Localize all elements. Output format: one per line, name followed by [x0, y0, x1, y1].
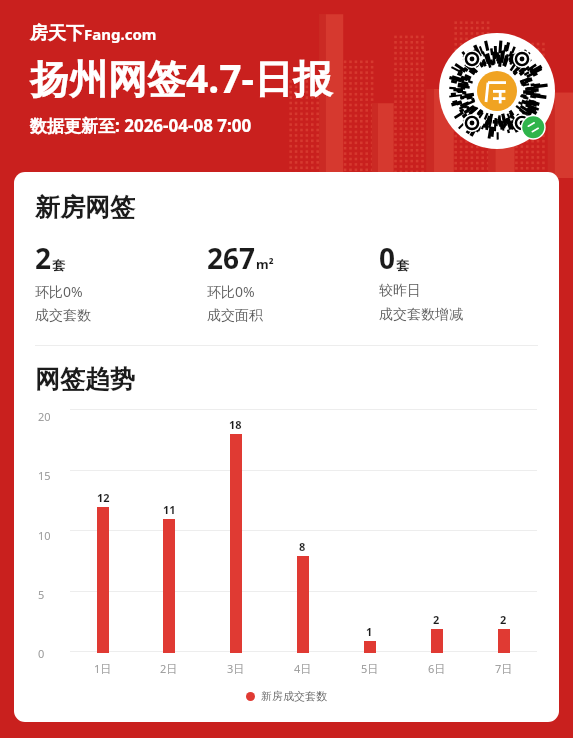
staticText: 5日 [361, 661, 379, 676]
staticText: 20 [38, 409, 51, 424]
staticText: 数据更新至: 2026-04-08 7:00 [30, 114, 252, 137]
staticText: 房天下 [30, 22, 84, 45]
staticText: 10 [38, 528, 51, 543]
staticText: 成交面积 [207, 307, 263, 325]
button[interactable]: 2 [470, 409, 537, 676]
staticText: 扬州网签4.7-日报 [30, 51, 333, 104]
staticText: 12 [97, 490, 110, 505]
staticText: m² [256, 255, 274, 273]
staticText: 0 [38, 646, 45, 661]
button[interactable]: 11 [136, 409, 202, 676]
staticText: 18 [229, 417, 242, 432]
staticText: 2 [35, 239, 52, 277]
staticText: 新房网签 [35, 192, 135, 223]
staticText: 较昨日 [379, 282, 421, 300]
staticText: 0 [379, 239, 396, 277]
staticText: 网签趋势 [35, 364, 135, 395]
button[interactable]: 2 [403, 409, 470, 676]
staticText: Fang.com [84, 24, 157, 44]
staticText: 2 [433, 612, 440, 627]
staticText: 环比0% [35, 282, 83, 301]
staticText: 1 [366, 624, 373, 639]
button[interactable]: 18 [202, 409, 269, 676]
staticText: 8 [299, 539, 306, 554]
staticText: 5 [38, 587, 45, 602]
staticText: 15 [38, 468, 51, 483]
staticText: 6日 [428, 661, 446, 676]
staticText: 1日 [94, 661, 112, 676]
staticText: 新房成交套数 [261, 689, 327, 703]
staticText: 成交套数增减 [379, 306, 463, 324]
staticText: 2日 [160, 661, 178, 676]
staticText: 套 [396, 257, 409, 273]
button[interactable]: 12 [70, 409, 136, 676]
button[interactable]: 8 [269, 409, 336, 676]
staticText: 267 [207, 239, 256, 277]
button[interactable]: 0 [379, 239, 551, 324]
staticText: 7日 [495, 661, 513, 676]
button[interactable]: 267 [207, 239, 379, 325]
staticText: 11 [163, 502, 176, 517]
staticText: 套 [52, 257, 65, 273]
button[interactable]: 2 [35, 239, 207, 325]
staticText: 2 [500, 612, 507, 627]
staticText: 成交套数 [35, 307, 91, 325]
button[interactable]: 新房成交套数 [246, 689, 327, 703]
staticText: 4日 [294, 661, 312, 676]
button[interactable]: 1 [336, 409, 403, 676]
staticText: 环比0% [207, 282, 255, 301]
staticText: 3日 [227, 661, 245, 676]
button[interactable]: Scan QR code to open mini program [439, 33, 555, 149]
